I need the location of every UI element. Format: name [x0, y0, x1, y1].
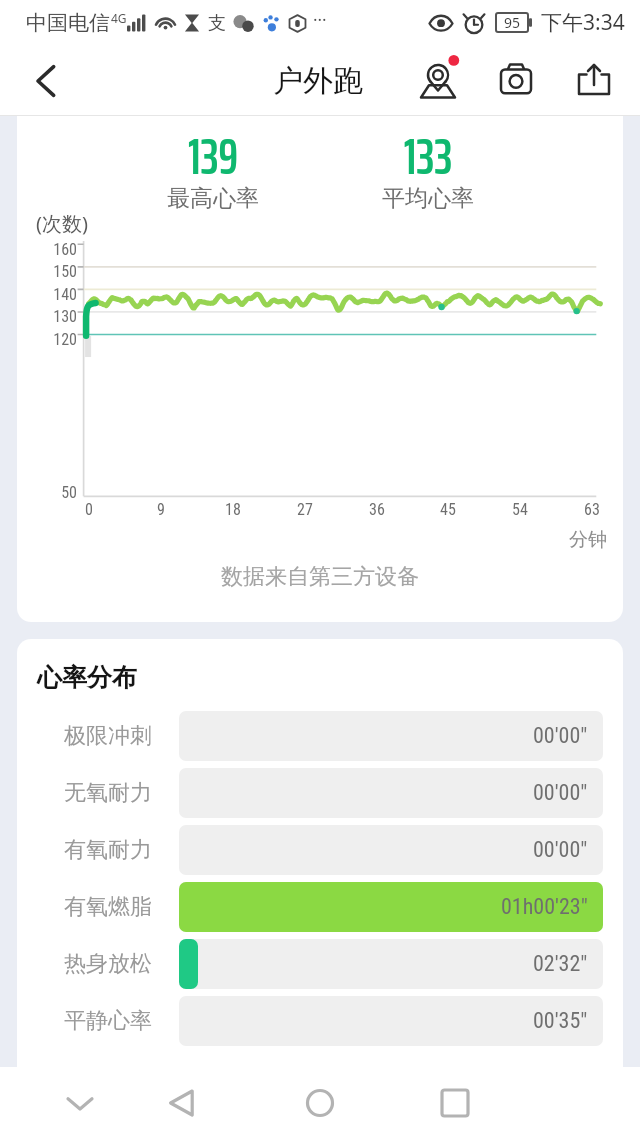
button[interactable]: Back [17, 52, 75, 110]
staticText: 120 [17, 330, 77, 349]
button[interactable]: 有氧耐力 [17, 825, 623, 875]
staticText: 36 [352, 500, 402, 519]
staticText: ··· [313, 8, 327, 31]
staticText: 01h00'23" [501, 894, 588, 920]
button[interactable]: Back [149, 1067, 215, 1138]
staticText: 63 [567, 500, 617, 519]
button[interactable]: 极限冲刺 [17, 711, 623, 761]
staticText: 150 [17, 262, 77, 281]
staticText: 50 [17, 483, 77, 502]
staticText: 热身放松 [64, 950, 152, 978]
staticText: 9 [136, 500, 186, 519]
staticText: 00'00" [533, 837, 588, 863]
staticText: 133 [338, 117, 518, 196]
button[interactable]: 有氧燃脂 [17, 882, 623, 932]
staticText: 有氧燃脂 [64, 893, 152, 921]
staticText: 160 [17, 240, 77, 259]
staticText: 27 [280, 500, 330, 519]
staticText: 00'00" [533, 723, 588, 749]
staticText: 0 [64, 500, 114, 519]
staticText: 有氧耐力 [64, 836, 152, 864]
staticText: 00'35" [533, 1008, 588, 1034]
staticText: 平均心率 [338, 184, 518, 213]
button[interactable]: 平静心率 [17, 996, 623, 1046]
button[interactable]: Home [287, 1067, 353, 1138]
button[interactable]: Recents [422, 1067, 488, 1138]
staticText: 95 [504, 13, 521, 32]
button[interactable]: 无氧耐力 [17, 768, 623, 818]
staticText: 02'32" [533, 951, 588, 977]
button[interactable]: Map location [404, 45, 472, 116]
staticText: 最高心率 [123, 184, 303, 213]
staticText: 户外跑 [273, 62, 363, 100]
staticText: 45 [423, 500, 473, 519]
staticText: 心率分布 [37, 662, 137, 693]
staticText: 极限冲刺 [64, 722, 152, 750]
staticText: 下午3:34 [541, 8, 625, 37]
staticText: 数据来自第三方设备 [17, 563, 623, 591]
staticText: 支 [208, 12, 226, 35]
button[interactable]: 热身放松 [17, 939, 623, 989]
staticText: 中国电信 [26, 10, 110, 36]
staticText: 平静心率 [64, 1007, 152, 1035]
staticText: 00'00" [533, 780, 588, 806]
staticText: 无氧耐力 [64, 779, 152, 807]
button[interactable]: Hide keyboard [47, 1067, 113, 1138]
staticText: 分钟 [569, 528, 607, 552]
button[interactable]: Camera [482, 45, 550, 116]
staticText: 54 [495, 500, 545, 519]
staticText: 4G [111, 10, 127, 26]
staticText: 139 [123, 117, 303, 196]
staticText: 140 [17, 285, 77, 304]
staticText: 130 [17, 307, 77, 326]
staticText: (次数) [36, 210, 88, 237]
staticText: 18 [208, 500, 258, 519]
button[interactable]: Share [560, 45, 628, 116]
